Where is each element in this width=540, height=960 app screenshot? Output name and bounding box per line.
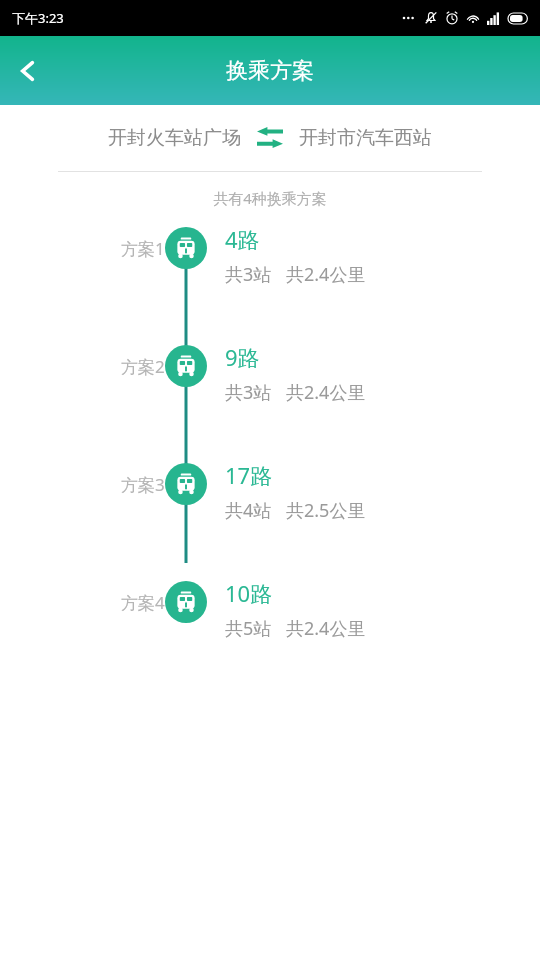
staticText: 方案3 — [121, 473, 165, 496]
button[interactable]: 方案1 — [0, 222, 540, 287]
staticText: 4路 — [225, 224, 260, 254]
staticText: 方案2 — [121, 355, 165, 378]
staticText: 共4站 — [225, 498, 272, 523]
staticText: 17路 — [225, 460, 273, 490]
staticText: 方案1 — [121, 237, 165, 260]
button[interactable]: Back — [0, 43, 56, 99]
staticText: 开封市汽车西站 — [299, 126, 432, 150]
staticText: 共3站 — [225, 380, 272, 405]
staticText: 共2.4公里 — [286, 262, 366, 287]
button[interactable]: 方案2 — [0, 340, 540, 405]
staticText: 共有4种换乘方案 — [0, 188, 540, 208]
button[interactable]: 方案3 — [0, 458, 540, 523]
staticText: 共3站 — [225, 262, 272, 287]
staticText: 共2.5公里 — [286, 498, 366, 523]
button[interactable]: 方案4 — [0, 576, 540, 641]
staticText: 方案4 — [121, 591, 165, 614]
staticText: 开封火车站广场 — [108, 126, 241, 150]
staticText: 9路 — [225, 342, 260, 372]
staticText: 10路 — [225, 578, 273, 608]
staticText: 下午3:23 — [12, 9, 64, 27]
button[interactable]: Swap stations — [255, 123, 285, 153]
staticText: 共2.4公里 — [286, 616, 366, 641]
staticText: 共5站 — [225, 616, 272, 641]
staticText: 换乘方案 — [226, 57, 314, 85]
staticText: 共2.4公里 — [286, 380, 366, 405]
